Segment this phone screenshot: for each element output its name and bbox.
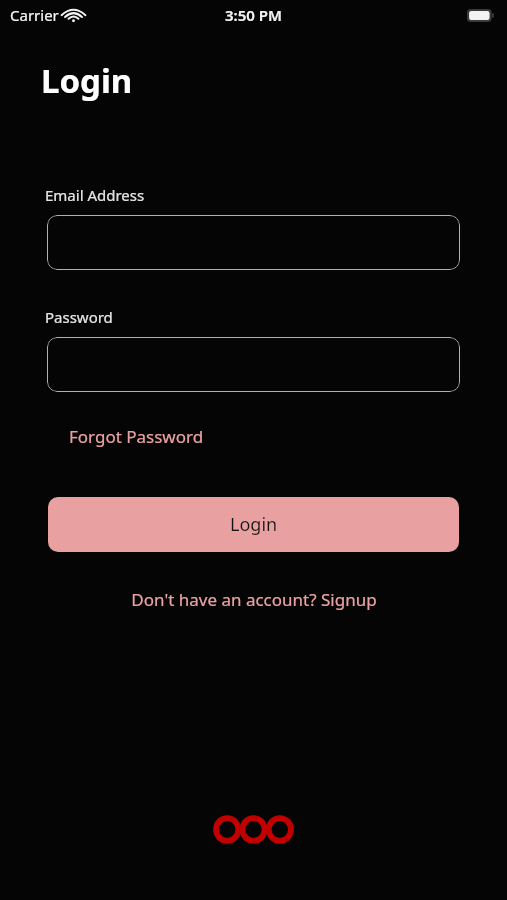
staticText: Password [45, 307, 113, 327]
staticText: 3:50 PM [225, 5, 282, 25]
other: App logo [214, 815, 293, 844]
staticText: Login [41, 58, 133, 103]
button[interactable]: Forgot Password [60, 421, 213, 452]
button[interactable]: Text input field [47, 337, 460, 392]
staticText: Don't have an account? Signup [131, 588, 377, 611]
button[interactable]: Login [48, 497, 459, 552]
button[interactable]: Text input field [47, 215, 460, 270]
staticText: Email Address [45, 185, 145, 205]
staticText: Login [230, 512, 278, 537]
button[interactable]: Don't have an account? Signup [121, 584, 387, 615]
staticText: Forgot Password [69, 425, 204, 448]
staticText: Carrier [10, 5, 59, 25]
